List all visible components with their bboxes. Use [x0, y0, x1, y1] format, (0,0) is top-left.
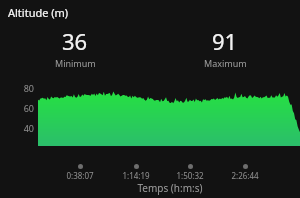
- staticText: Minimum: [55, 57, 96, 69]
- staticText: 0:38:07: [50, 170, 110, 181]
- staticText: Temps (h:m:s): [110, 181, 230, 195]
- staticText: Maximum: [204, 57, 247, 69]
- staticText: 60: [8, 102, 34, 114]
- button[interactable]: 36: [0, 26, 150, 69]
- staticText: 91: [212, 26, 238, 56]
- button[interactable]: Altitude chart: [0, 79, 300, 159]
- staticText: 80: [8, 82, 34, 94]
- staticText: Altitude (m): [8, 5, 69, 20]
- staticText: 1:14:19: [106, 170, 166, 181]
- staticText: 36: [62, 26, 88, 56]
- staticText: 40: [8, 122, 34, 134]
- button[interactable]: 91: [150, 26, 300, 69]
- staticText: 2:26:44: [215, 170, 275, 181]
- staticText: 1:50:32: [160, 170, 220, 181]
